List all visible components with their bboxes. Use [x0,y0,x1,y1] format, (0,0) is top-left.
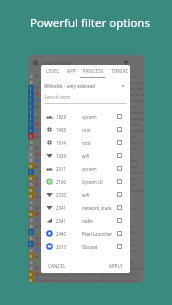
staticText: Package manager scan done Telephony regi… [40,182,135,187]
staticText: PROCESS [83,68,104,74]
staticText: network_stack [82,205,117,211]
staticText: Window focus changed true Service starte… [40,266,144,271]
staticText: system [82,114,117,120]
staticText: wifi [82,153,117,159]
button[interactable]: 2330 [46,188,122,201]
staticText: W [29,188,33,193]
staticText: ViewRootImpl draw finished Battery stats… [40,146,137,151]
staticText: D [30,260,33,265]
staticText: 2330 [56,192,82,198]
staticText: THREAD [111,68,128,74]
staticText: Binder transaction for uid 1000 GC freed… [40,86,143,91]
staticText: 1829 [56,114,82,120]
staticText: W [29,194,33,199]
staticText: W [29,164,33,169]
button[interactable]: 2013 [46,240,122,253]
staticText: 2440 [56,231,82,237]
staticText: I [30,170,32,175]
button[interactable]: APP [67,65,76,77]
staticText: 1914 [56,140,82,146]
button[interactable]: 2440 [46,227,122,240]
staticText: Whitelist - only selected [44,83,95,89]
staticText: I [30,86,32,91]
button[interactable]: Whitelist - only selected [44,81,125,90]
staticText: D [30,80,33,85]
staticText: radio [82,218,117,224]
staticText: root [82,127,117,133]
other: Search [33,60,39,66]
button[interactable]: 2160 [46,175,122,188]
staticText: Bluetooth adapter state off Storage volu… [40,230,136,235]
staticText: Gboard [82,244,117,250]
button[interactable]: 1905 [46,123,122,136]
staticText: Battery stats flush complete Package man… [40,164,138,169]
staticText: APP [67,68,76,74]
staticText: Recents animation started Binder transac… [40,272,139,277]
other: More options [134,60,140,66]
staticText: System UI visibility change onResume cal… [40,260,135,265]
button[interactable]: CANCEL [48,263,66,269]
staticText: SurfaceFlinger vsync tick Bluetooth adap… [40,212,130,217]
staticText: Telephony registry update Thermal thrott… [40,200,126,205]
staticText: W [29,176,33,181]
staticText: D [30,140,33,145]
staticText: Failed to load resource 0x7f0a Sensor li… [40,140,141,145]
staticText: Input event dispatched to view Location … [40,206,138,211]
staticText: system [82,166,117,172]
staticText: Powerful filter options [30,15,150,31]
staticText: V [30,158,33,163]
staticText: I [30,92,32,97]
staticText: Service started: NetworkMonitor Waiting … [40,80,144,85]
staticText: Job finished successfully Recents animat… [40,254,127,259]
button[interactable]: APPLY [109,263,123,269]
other: Filter [123,60,129,66]
staticText: Notification posted to channel Input eve… [40,188,144,193]
staticText: Location provider enabled Media session … [40,224,135,229]
staticText: Connection established to server Backgro… [40,110,144,115]
staticText: I [30,128,32,133]
staticText: W [29,272,33,277]
staticText: root [82,140,117,146]
staticText: D [30,236,33,241]
staticText: D [30,206,33,211]
staticText: D [30,200,33,205]
staticText: GC freed 2048K, paused 4ms Received sign… [40,104,138,109]
staticText: Permission check for package Activity li… [40,134,134,139]
staticText: CANCEL [48,263,66,269]
button[interactable]: 2011 [46,162,122,175]
staticText: 2160 [56,179,82,185]
button[interactable]: 2341 [46,214,122,227]
staticText: Storage volume mounted sd Window focus c… [40,248,137,253]
staticText: Search term [44,94,71,100]
staticText: LEVEL [46,68,60,74]
staticText: D [30,266,33,271]
staticText: V [30,152,33,157]
staticText: I [30,110,32,115]
staticText: WifiStateMachine entering state Permissi… [40,116,144,121]
staticText: System UI [82,179,117,185]
staticText: I [30,242,32,247]
staticText: D [30,146,33,151]
staticText: Search logs [42,59,72,66]
staticText: Dispatching broadcast intent Connection … [40,92,144,97]
button[interactable]: 1829 [46,110,122,123]
staticText: D [30,224,33,229]
staticText: I [30,230,32,235]
staticText: onResume called for activity Dispatching… [40,278,138,283]
button[interactable]: THREAD [111,65,128,77]
staticText: APPLY [109,263,123,269]
staticText: 1929 [56,153,82,159]
staticText: D [30,74,33,79]
staticText: Activity lifecycle onPause Display power… [40,152,133,157]
button[interactable]: PROCESS [83,65,104,77]
button[interactable]: LEVEL [46,65,60,77]
staticText: Received signal level update Failed to l… [40,122,140,127]
staticText: Display power state changed Notification… [40,170,142,175]
staticText: D [30,182,33,187]
staticText: 2341 [56,218,82,224]
button[interactable]: 1914 [46,136,122,149]
staticText: D [30,218,33,223]
button[interactable]: 2341 [46,201,122,214]
button[interactable]: 1929 [46,149,122,162]
staticText: E [30,134,32,139]
